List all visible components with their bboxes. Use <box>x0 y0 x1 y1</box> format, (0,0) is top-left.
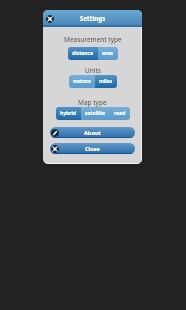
button[interactable]: road <box>110 107 130 120</box>
staticText: Settings <box>80 14 106 22</box>
button[interactable]: About <box>50 127 135 138</box>
button[interactable]: hybrid <box>56 107 81 120</box>
staticText: Units <box>85 66 101 75</box>
button[interactable]: miles <box>95 75 117 88</box>
staticText: Close <box>85 145 100 153</box>
button[interactable]: area <box>98 47 118 60</box>
staticText: distance <box>72 50 94 57</box>
staticText: satellite <box>85 110 106 117</box>
staticText: area <box>102 50 114 57</box>
button[interactable]: satellite <box>81 107 110 120</box>
staticText: Measurement type <box>64 35 122 44</box>
button[interactable]: Close <box>51 145 59 153</box>
button[interactable]: meters <box>69 75 95 88</box>
staticText: road <box>114 110 126 117</box>
staticText: meters <box>73 78 91 85</box>
staticText: miles <box>99 78 113 85</box>
staticText: hybrid <box>60 110 77 117</box>
button[interactable]: Close dialog <box>46 15 54 23</box>
staticText: Map type <box>78 98 107 107</box>
button[interactable]: Close <box>50 143 135 154</box>
button[interactable]: distance <box>68 47 98 60</box>
staticText: About <box>84 129 101 137</box>
button[interactable]: About <box>51 129 59 137</box>
